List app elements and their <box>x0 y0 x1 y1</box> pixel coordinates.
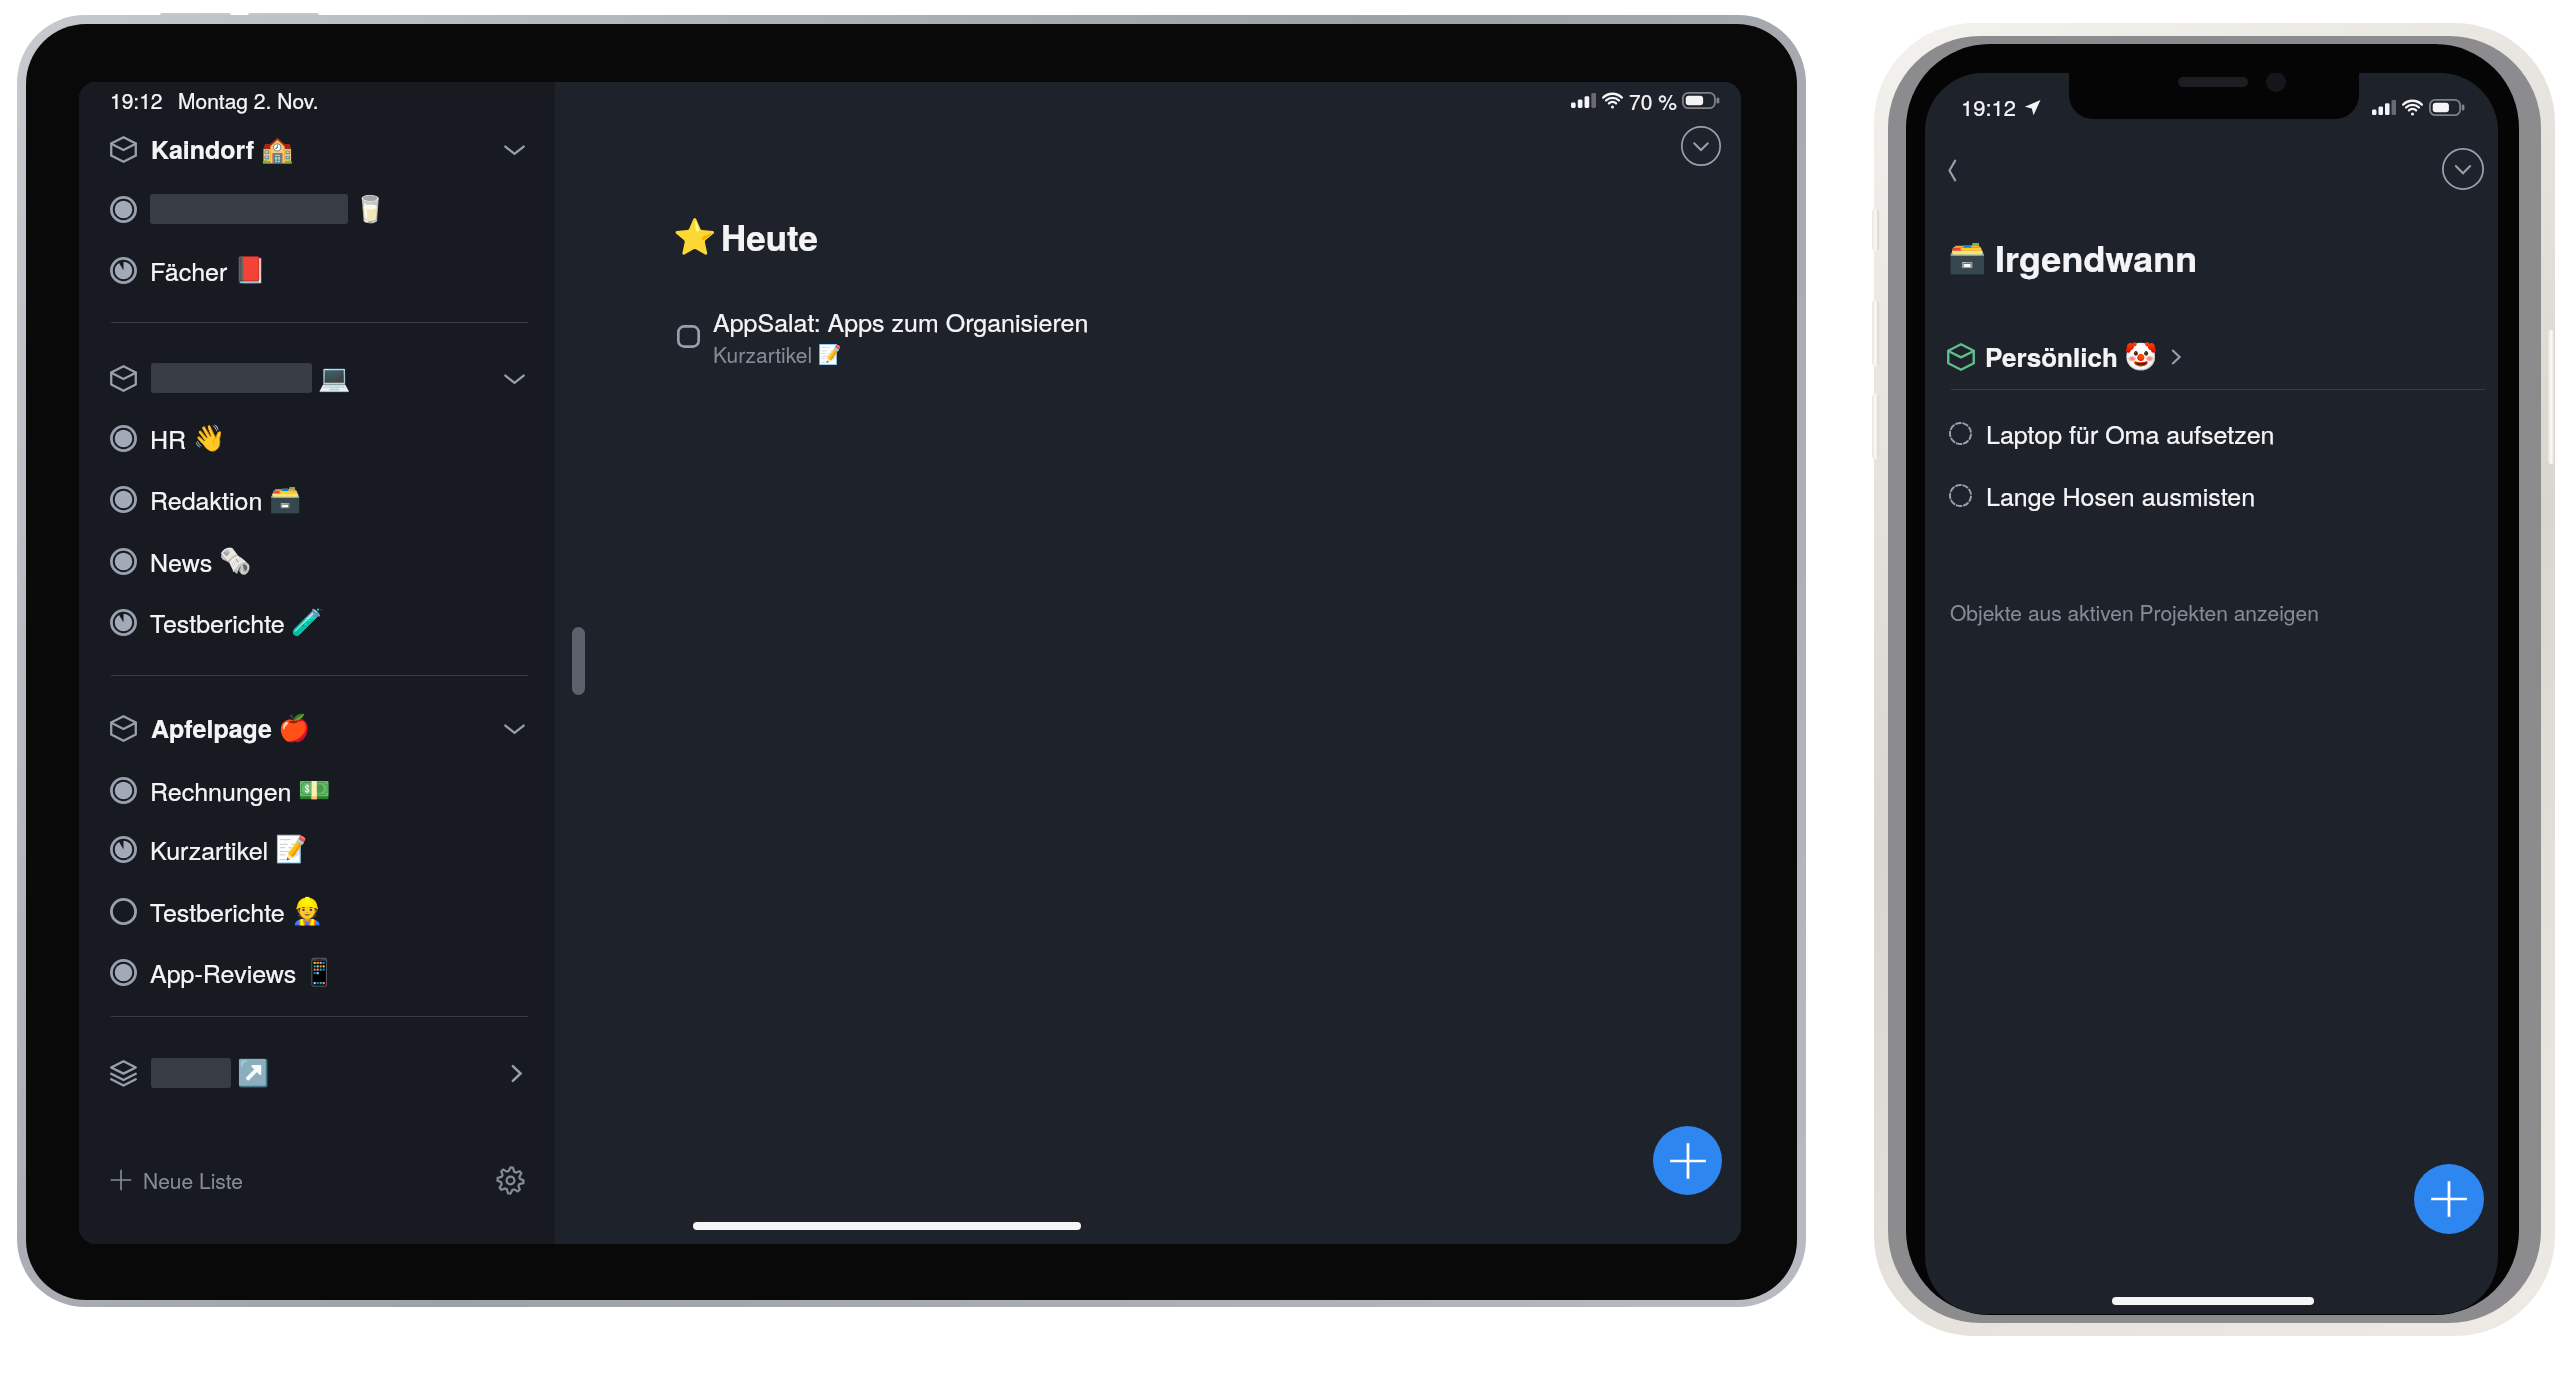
staticText: 🗃️ <box>269 484 302 514</box>
staticText: Objekte aus aktiven Projekten anzeigen <box>1950 597 2319 627</box>
staticText: 👷 <box>291 896 324 926</box>
button[interactable]: Kaindorf <box>79 131 555 167</box>
staticText: 💻 <box>318 363 351 393</box>
button[interactable]: HR <box>79 420 555 456</box>
staticText: 📱 <box>303 957 336 987</box>
staticText: Kurzartikel <box>150 831 269 867</box>
staticText: News <box>150 543 213 579</box>
staticText: ⭐ <box>673 217 717 258</box>
button[interactable]: Apfelpage <box>79 710 555 746</box>
staticText: Irgendwann <box>1995 231 2198 283</box>
button[interactable]: Neue Liste <box>110 1165 243 1195</box>
button[interactable]: Rechnungen <box>79 772 555 808</box>
staticText: 🗃️ <box>1948 239 1987 275</box>
staticText: AppSalat: Apps zum Organisieren <box>713 303 1089 339</box>
staticText: Rechnungen <box>150 772 292 808</box>
staticText: HR <box>150 420 187 456</box>
staticText: Persönlich <box>1985 338 2118 375</box>
button[interactable]: Testberichte <box>79 893 555 929</box>
button[interactable]: Testberichte <box>79 604 555 640</box>
staticText: App-Reviews <box>150 954 297 990</box>
button[interactable]: App-Reviews <box>79 954 555 990</box>
button[interactable]: Settings <box>492 1162 528 1198</box>
staticText: 📝 <box>818 343 842 365</box>
button[interactable]: Fächer <box>79 252 555 288</box>
staticText: Redaktion <box>150 481 263 517</box>
button[interactable]: Redaktion <box>79 481 555 517</box>
button[interactable]: 💻 <box>79 363 555 393</box>
button[interactable]: 🥛 <box>79 194 555 224</box>
staticText: 19:12 <box>1961 91 2017 123</box>
staticText: 🤡 <box>2124 341 2158 373</box>
staticText: Laptop für Oma aufsetzen <box>1986 415 2275 451</box>
button[interactable]: Expand <box>2437 143 2489 195</box>
button[interactable]: Laptop für Oma aufsetzen <box>1925 415 2498 451</box>
button[interactable]: ↗️ <box>79 1058 555 1088</box>
staticText: 70 % <box>1629 86 1677 114</box>
button[interactable]: News <box>79 543 555 579</box>
staticText: 🥛 <box>354 194 387 224</box>
staticText: Heute <box>721 212 819 262</box>
button[interactable]: Expand <box>1675 120 1727 172</box>
button[interactable]: Lange Hosen ausmisten <box>1925 477 2498 513</box>
staticText: Kaindorf <box>151 131 255 167</box>
staticText: 📝 <box>275 834 308 864</box>
staticText: Apfelpage <box>151 710 272 746</box>
staticText: 📕 <box>234 255 267 285</box>
staticText: 🏫 <box>261 134 294 164</box>
staticText: ↗️ <box>237 1058 270 1088</box>
staticText: 🧪 <box>291 607 324 637</box>
button[interactable]: Back <box>1928 146 1976 194</box>
staticText: Lange Hosen ausmisten <box>1986 477 2256 513</box>
staticText: 🗞️ <box>219 546 252 576</box>
button[interactable]: Persönlich <box>1947 338 2186 375</box>
staticText: Montag 2. Nov. <box>178 85 319 115</box>
staticText: 19:12 <box>110 85 163 115</box>
button[interactable]: Add <box>1653 1126 1722 1195</box>
staticText: Neue Liste <box>143 1165 243 1195</box>
button[interactable]: Add <box>2414 1164 2484 1234</box>
staticText: 👋 <box>193 423 226 453</box>
staticText: Testberichte <box>150 604 285 640</box>
staticText: 🍎 <box>278 713 311 743</box>
staticText: Kurzartikel <box>713 339 813 369</box>
staticText: Testberichte <box>150 893 285 929</box>
staticText: 💵 <box>298 775 331 805</box>
staticText: Fächer <box>150 252 228 288</box>
button[interactable]: AppSalat: Apps zum Organisieren <box>677 302 1089 370</box>
button[interactable]: Kurzartikel <box>79 831 555 867</box>
